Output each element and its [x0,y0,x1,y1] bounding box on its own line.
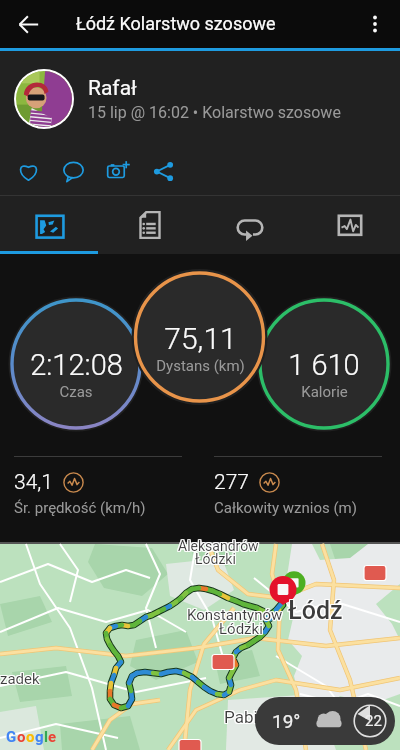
staticText: Pabia [223,706,266,726]
staticText: zadek [0,669,39,687]
staticText: Rok [334,699,360,717]
staticText: Łódź [288,596,343,625]
staticText: Łódź [287,596,342,625]
staticText: 2:12:08 [30,348,123,382]
staticText: Aleksandrów [177,539,258,555]
staticText: Pabia [224,708,267,728]
staticText: Pabia [225,708,268,728]
staticText: Łódzki [195,552,236,568]
staticText: Konstantynów [187,606,283,624]
button[interactable]: Add photo [96,149,141,194]
staticText: zadek [0,669,40,687]
staticText: Całkowity wznios (m) [214,499,357,517]
staticText: Pabia [225,706,268,726]
button[interactable]: More options [352,1,398,47]
staticText: Łódź [289,597,344,626]
staticText: Rok [335,697,361,715]
staticText: Rok [333,697,359,715]
button[interactable]: Back [5,1,51,47]
staticText: Pabia [223,707,266,727]
button[interactable]: Weather [272,697,387,745]
staticText: Łódź [289,595,344,624]
staticText: zadek [0,671,39,689]
staticText: o [17,728,26,746]
staticText: Łódzki [220,621,264,639]
staticText: Łódzki [218,620,262,638]
staticText: Aleksandrów [179,537,260,553]
button[interactable]: Photos [0,196,100,254]
staticText: Łódzki [220,620,264,638]
staticText: Konstantynów [188,606,284,624]
staticText: e [48,728,57,746]
staticText: Łódź [287,597,342,626]
staticText: Aleksandrów [178,538,259,554]
staticText: Rok [335,699,361,717]
staticText: zadek [1,671,41,689]
staticText: 34,1 [14,470,53,495]
staticText: Czas [59,383,93,401]
staticText: o [26,728,35,746]
staticText: Rok [334,698,360,716]
staticText: 15 lip @ 16:02 • Kolarstwo szosowe [88,103,341,122]
staticText: Dystans (km) [156,357,245,375]
staticText: Aleksandrów [177,538,258,554]
staticText: zadek [0,670,39,688]
staticText: Aleksandrów [178,537,259,553]
staticText: Konstantynów [186,606,282,624]
staticText: Łódzki [195,550,236,566]
button[interactable]: Analysis [300,196,400,254]
staticText: Łódzki [196,552,237,568]
staticText: Aleksandrów [177,537,258,553]
staticText: Łódź [288,595,343,624]
staticText: Łódzki [194,551,235,567]
staticText: Rok [334,697,360,715]
staticText: Pabia [224,707,267,727]
button[interactable]: Comment [51,149,96,194]
staticText: 277 [214,470,249,495]
staticText: l [44,728,48,746]
staticText: Konstantynów [187,607,283,625]
staticText: g [35,728,44,746]
staticText: Łódź [289,596,344,625]
button[interactable]: Like [6,149,51,194]
staticText: Aleksandrów [179,539,260,555]
staticText: G [6,728,17,746]
staticText: zadek [0,671,40,689]
button[interactable]: Share [141,149,186,194]
staticText: Pabia [223,708,266,728]
staticText: Łódzki [220,619,264,637]
staticText: Łódzki [194,550,235,566]
staticText: Łódzki [219,619,263,637]
staticText: Łódzki [218,619,262,637]
staticText: Łódź [288,597,343,626]
staticText: Łódzki [218,621,262,639]
staticText: Aleksandrów [178,539,259,555]
staticText: 19° [272,710,301,732]
staticText: Łódzki [219,621,263,639]
staticText: Konstantynów [188,607,284,625]
button[interactable]: Laps [200,196,300,254]
staticText: Rafał [88,76,137,101]
staticText: Konstantynów [187,605,283,623]
staticText: Rok [333,698,359,716]
button[interactable]: Details [100,196,200,254]
staticText: Konstantynów [186,607,282,625]
staticText: Łódzki [194,552,235,568]
staticText: Konstantynów [188,605,284,623]
staticText: 22 [365,712,382,730]
staticText: zadek [1,669,41,687]
staticText: Konstantynów [186,605,282,623]
staticText: Rok [333,699,359,717]
staticText: Rok [335,698,361,716]
staticText: Łódzki [219,620,263,638]
staticText: Aleksandrów [179,538,260,554]
staticText: Śr. prędkość (km/h) [14,499,146,517]
staticText: 75,11 [164,321,237,356]
staticText: Pabia [224,706,267,726]
staticText: Łódź Kolarstwo szosowe [76,13,276,34]
staticText: Łódź [287,595,342,624]
staticText: zadek [1,670,41,688]
staticText: Łódzki [196,550,237,566]
staticText: zadek [0,670,40,688]
staticText: 1 610 [288,348,360,382]
